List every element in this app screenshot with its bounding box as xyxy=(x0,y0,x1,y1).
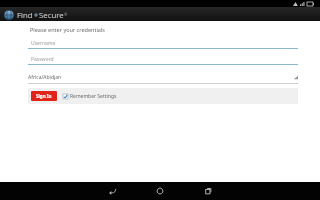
staticText: Remember Settings xyxy=(70,93,117,100)
other: Open time zone list xyxy=(293,75,298,80)
button[interactable]: Password xyxy=(28,55,298,65)
button[interactable]: Username xyxy=(28,39,298,49)
staticText: Africa/Abidjan xyxy=(28,74,293,81)
button[interactable]: Home xyxy=(143,182,177,200)
staticText: Please enter your credentials xyxy=(30,26,105,33)
button[interactable]: Africa/Abidjan xyxy=(28,72,298,83)
button[interactable]: Back xyxy=(95,182,129,200)
button[interactable]: Sign In xyxy=(31,91,57,101)
staticText: Sign In xyxy=(36,93,52,99)
staticText: Secure xyxy=(39,9,64,20)
staticText: ® xyxy=(64,12,68,17)
staticText: Username xyxy=(31,40,56,47)
staticText: Find xyxy=(17,9,33,20)
button[interactable]: Recent apps xyxy=(191,182,225,200)
staticText: Password xyxy=(31,56,54,63)
button[interactable]: Remember Settings xyxy=(63,93,117,100)
